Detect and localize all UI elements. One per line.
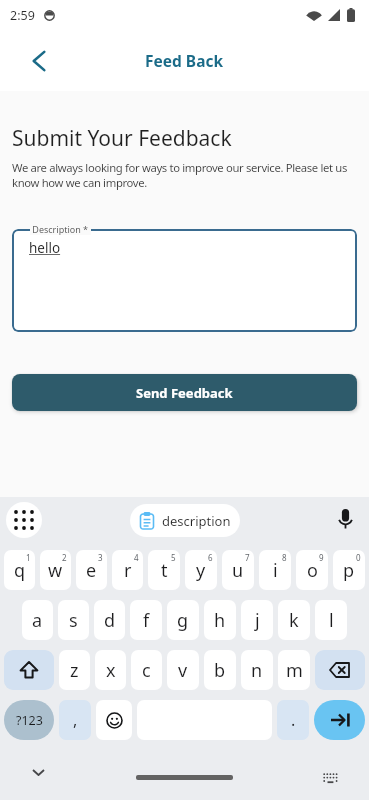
staticText: 1 [26, 552, 31, 563]
staticText: 6 [208, 552, 213, 563]
staticText: y [196, 558, 206, 583]
staticText: p [343, 558, 355, 583]
staticText: We are always looking for ways to improv… [12, 160, 348, 190]
staticText: 2:59 [10, 7, 35, 24]
staticText: l [329, 608, 334, 633]
staticText: 5 [171, 552, 176, 563]
staticText: z [70, 658, 79, 683]
staticText: Feed Back [145, 50, 224, 71]
staticText: v [178, 658, 188, 683]
staticText: Description * [30, 223, 91, 235]
staticText: Submit Your Feedback [12, 124, 232, 153]
staticText: a [32, 608, 43, 633]
staticText: x [106, 658, 116, 683]
staticText: 3 [98, 552, 103, 563]
staticText: r [124, 558, 132, 583]
staticText: k [289, 608, 299, 633]
staticText: e [86, 558, 97, 583]
staticText: 9 [319, 552, 324, 563]
staticText: g [177, 608, 189, 633]
staticText: description [162, 512, 231, 530]
staticText: 2 [62, 552, 67, 563]
staticText: q [14, 558, 26, 583]
staticText: s [69, 608, 78, 633]
staticText: 7 [245, 552, 250, 563]
staticText: Send Feedback [136, 384, 233, 402]
staticText: hello [29, 239, 61, 257]
staticText: . [291, 709, 296, 731]
staticText: t [161, 558, 168, 583]
staticText: ?123 [16, 712, 43, 729]
staticText: f [143, 608, 150, 633]
staticText: 8 [282, 552, 287, 563]
staticText: n [251, 658, 263, 683]
staticText: , [73, 709, 78, 731]
staticText: h [214, 608, 226, 633]
staticText: i [273, 558, 278, 583]
staticText: d [104, 608, 116, 633]
staticText: j [255, 608, 260, 633]
staticText: c [142, 658, 151, 683]
staticText: 0 [356, 552, 361, 563]
staticText: w [48, 558, 63, 583]
staticText: m [286, 658, 303, 683]
staticText: b [214, 658, 226, 683]
staticText: o [307, 558, 318, 583]
staticText: 4 [134, 552, 139, 563]
staticText: u [232, 558, 244, 583]
